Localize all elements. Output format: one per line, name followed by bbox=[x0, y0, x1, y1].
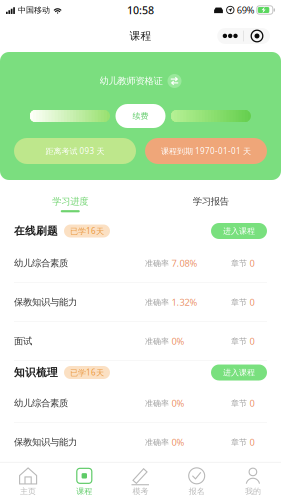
staticText: 模考 bbox=[132, 486, 148, 496]
staticText: 保教知识与能力 bbox=[14, 296, 77, 308]
staticText: 已学16天 bbox=[70, 367, 104, 378]
staticText: 幼儿教师资格证 bbox=[99, 75, 162, 87]
staticText: 距离考试 093 天 bbox=[45, 146, 104, 156]
staticText: 学习进度 bbox=[52, 196, 88, 207]
staticText: 章节 bbox=[231, 437, 247, 447]
staticText: 10:58 bbox=[127, 3, 154, 17]
staticText: 章节 bbox=[231, 398, 247, 408]
staticText: 进入课程 bbox=[223, 226, 255, 236]
staticText: 课程 bbox=[129, 29, 151, 42]
button[interactable]: 模考 bbox=[112, 462, 169, 500]
button[interactable]: 学习报告 bbox=[140, 192, 281, 216]
button[interactable]: 幼儿综合素质 bbox=[0, 384, 281, 422]
staticText: 主页 bbox=[20, 486, 36, 496]
button[interactable]: 面试 bbox=[0, 322, 281, 360]
staticText: 报名 bbox=[189, 486, 205, 496]
button[interactable]: 我的 bbox=[225, 462, 281, 500]
staticText: 0 bbox=[249, 296, 254, 308]
staticText: 幼儿综合素质 bbox=[14, 257, 68, 269]
staticText: 章节 bbox=[231, 297, 247, 307]
button[interactable]: 进入课程 bbox=[211, 223, 267, 239]
staticText: 69% bbox=[237, 4, 255, 16]
staticText: 我的 bbox=[245, 486, 261, 496]
button[interactable]: 保教知识与能力 bbox=[0, 423, 281, 461]
staticText: 准确率 bbox=[145, 437, 169, 447]
staticText: 幼儿综合素质 bbox=[14, 397, 68, 409]
button[interactable]: 进入课程 bbox=[211, 364, 267, 380]
staticText: 课程 bbox=[76, 486, 92, 496]
staticText: 在线刷题 bbox=[14, 224, 58, 237]
staticText: 章节 bbox=[231, 258, 247, 268]
staticText: 准确率 bbox=[145, 398, 169, 408]
staticText: 准确率 bbox=[145, 258, 169, 268]
button[interactable]: 幼儿综合素质 bbox=[0, 244, 281, 282]
staticText: 课程到期 1970-01-01 天 bbox=[161, 146, 251, 156]
staticText: 0% bbox=[171, 436, 184, 448]
staticText: 中国移动 bbox=[18, 5, 50, 15]
staticText: 面试 bbox=[14, 335, 32, 347]
button[interactable]: 续费 bbox=[115, 104, 165, 128]
staticText: 保教知识与能力 bbox=[14, 436, 77, 448]
staticText: 已学16天 bbox=[70, 226, 104, 236]
button[interactable]: More bbox=[217, 28, 243, 44]
button[interactable]: 报名 bbox=[169, 462, 225, 500]
staticText: 续费 bbox=[132, 111, 148, 121]
staticText: 0 bbox=[249, 335, 254, 347]
button[interactable]: 学习进度 bbox=[0, 192, 140, 216]
staticText: 准确率 bbox=[145, 297, 169, 307]
staticText: 7.08% bbox=[171, 257, 197, 269]
staticText: 0% bbox=[171, 335, 184, 347]
button[interactable]: Switch course bbox=[167, 74, 181, 88]
staticText: 章节 bbox=[231, 336, 247, 346]
staticText: 0 bbox=[249, 397, 254, 409]
staticText: 0% bbox=[171, 397, 184, 409]
staticText: 进入课程 bbox=[223, 368, 255, 377]
staticText: 0 bbox=[249, 436, 254, 448]
staticText: 1.32% bbox=[171, 296, 197, 308]
button[interactable]: 主页 bbox=[0, 462, 56, 500]
staticText: 准确率 bbox=[145, 336, 169, 346]
staticText: 0 bbox=[249, 257, 254, 269]
button[interactable]: 保教知识与能力 bbox=[0, 283, 281, 321]
button[interactable]: 课程 bbox=[56, 462, 112, 500]
button[interactable]: Close mini program bbox=[244, 28, 270, 44]
staticText: 学习报告 bbox=[193, 196, 229, 207]
staticText: 知识梳理 bbox=[14, 366, 58, 379]
